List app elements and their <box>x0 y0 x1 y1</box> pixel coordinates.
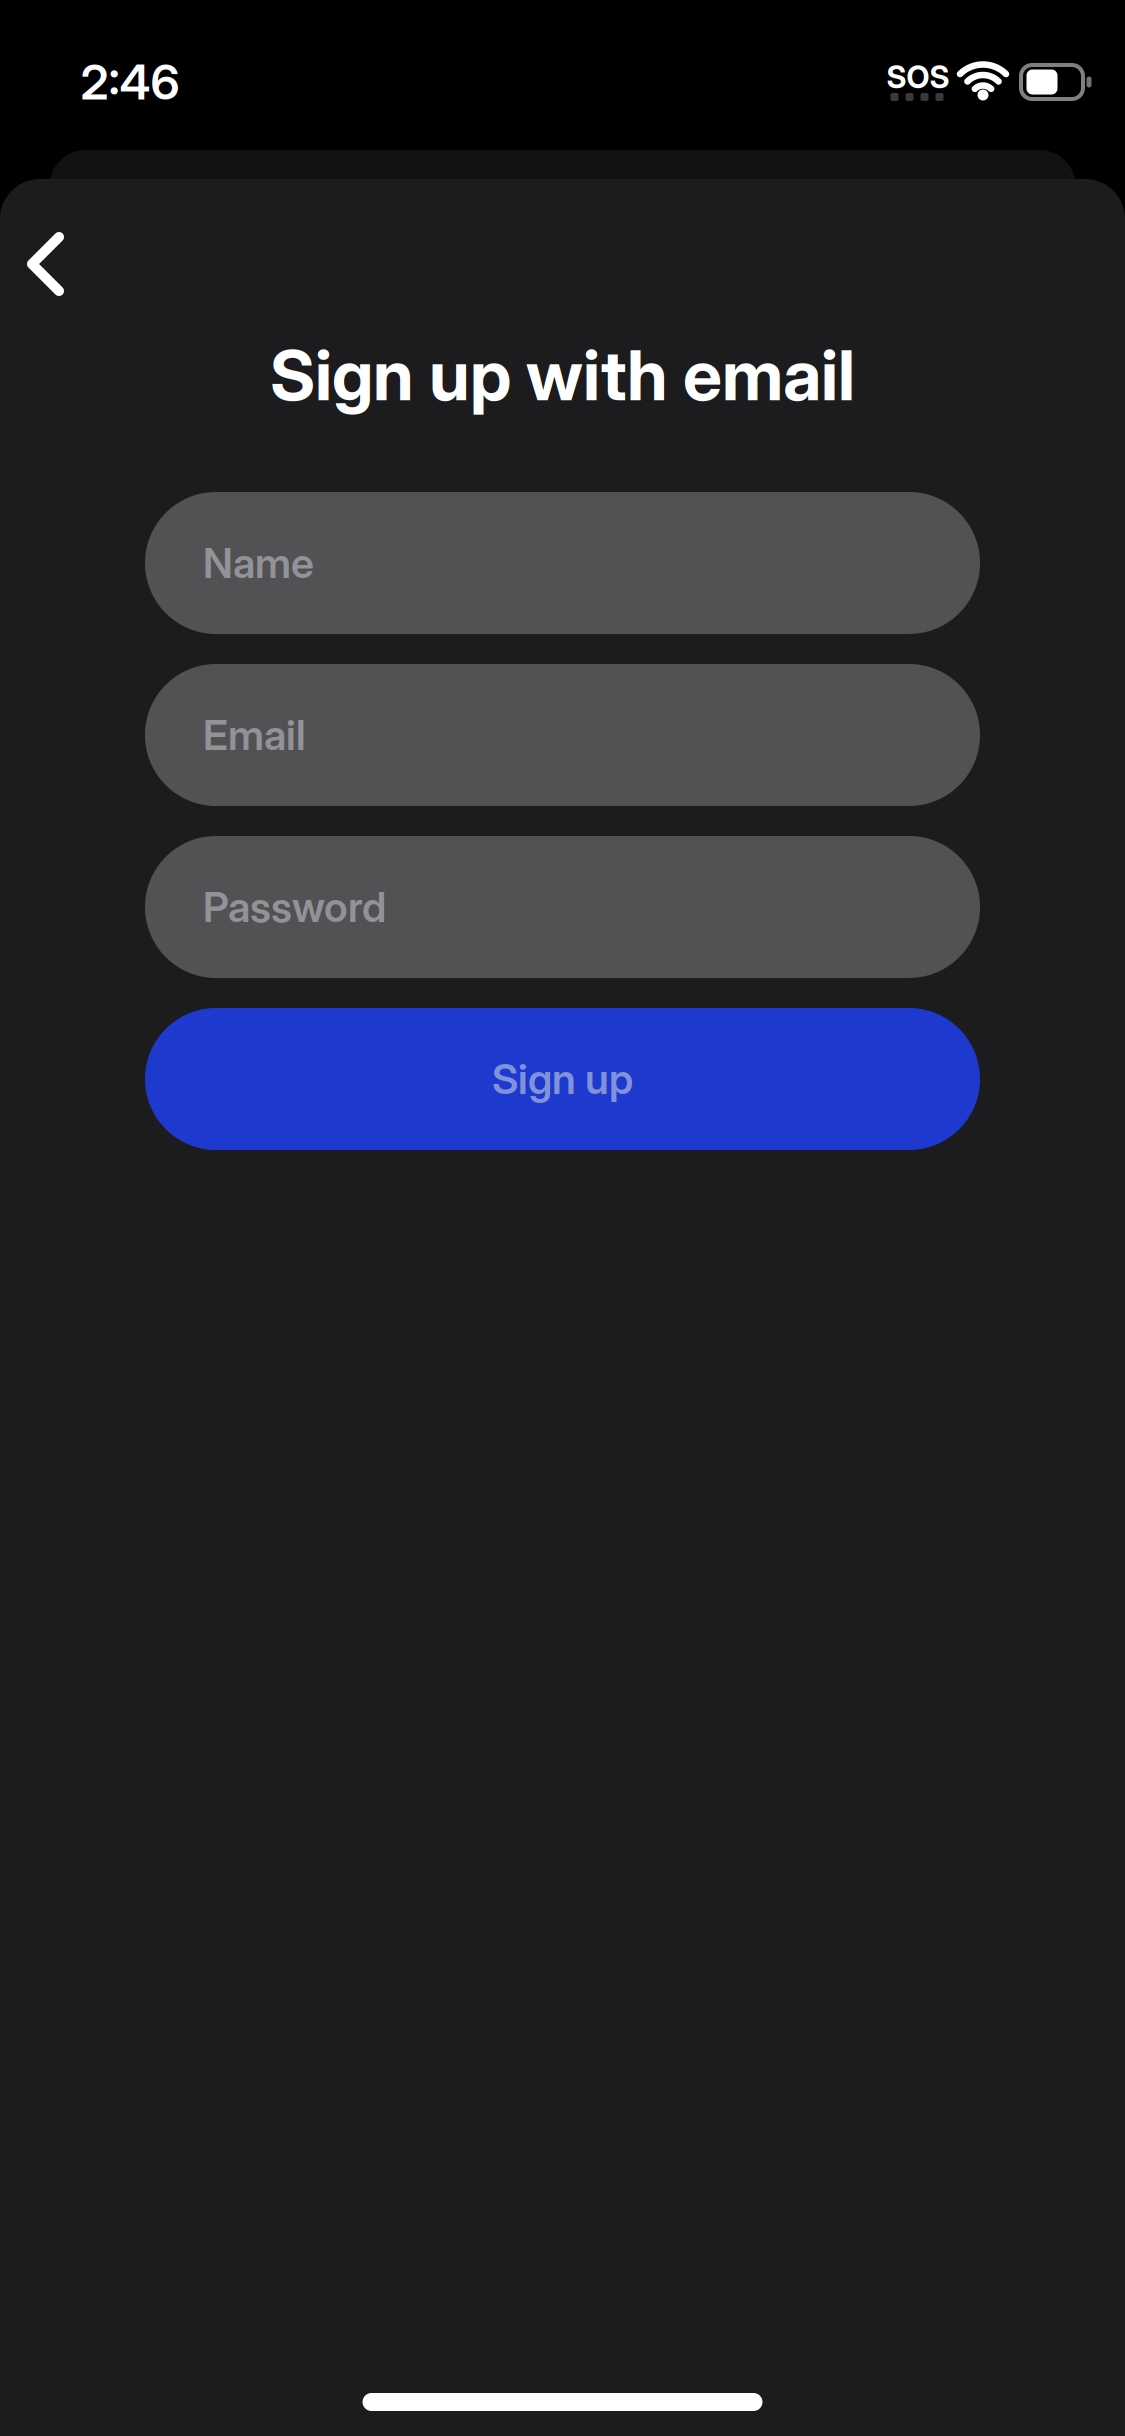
staticText: Sign up <box>492 1055 633 1103</box>
button[interactable]: Email <box>145 664 980 806</box>
button[interactable]: Sign up <box>145 1008 980 1150</box>
button[interactable]: Name <box>145 492 980 634</box>
staticText: Name <box>203 539 314 587</box>
staticText: SOS <box>886 59 949 95</box>
staticText: 2:46 <box>80 54 179 110</box>
staticText: Email <box>203 711 306 759</box>
button[interactable]: Back <box>1 220 89 308</box>
button[interactable]: Password <box>145 836 980 978</box>
staticText: Sign up with email <box>270 334 855 416</box>
staticText: Password <box>203 883 386 931</box>
